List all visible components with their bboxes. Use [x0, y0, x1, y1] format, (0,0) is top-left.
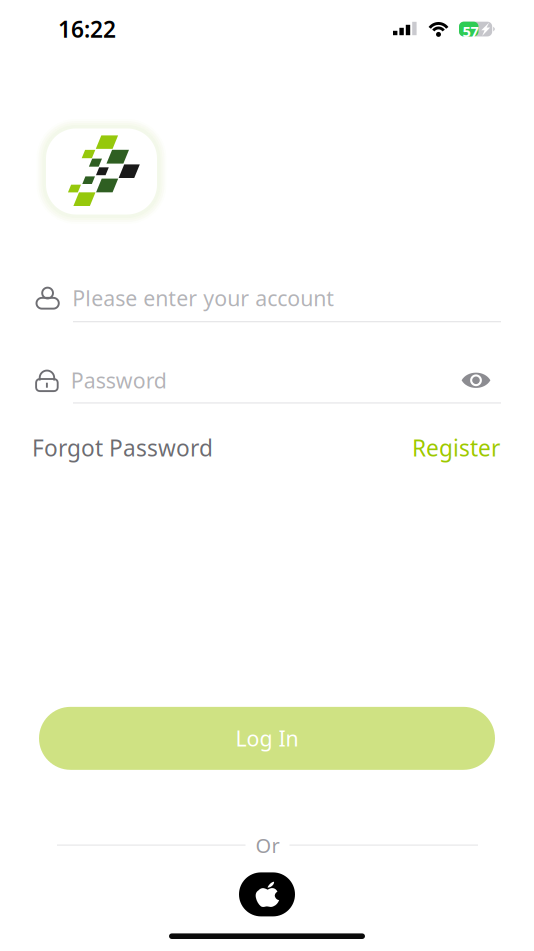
- staticText: 16:22: [58, 14, 116, 44]
- button[interactable]: Show password: [456, 366, 501, 394]
- button[interactable]: Register: [412, 433, 500, 463]
- staticText: Please enter your account: [72, 284, 334, 312]
- staticText: Password: [71, 366, 167, 394]
- staticText: Forgot Password: [32, 433, 213, 463]
- staticText: 57: [463, 22, 479, 41]
- staticText: Register: [412, 433, 500, 463]
- staticText: Or: [255, 832, 279, 858]
- button[interactable]: Sign in with Apple: [239, 872, 295, 916]
- staticText: Log In: [235, 724, 298, 752]
- button[interactable]: Forgot Password: [32, 433, 213, 463]
- button[interactable]: Log In: [39, 707, 495, 770]
